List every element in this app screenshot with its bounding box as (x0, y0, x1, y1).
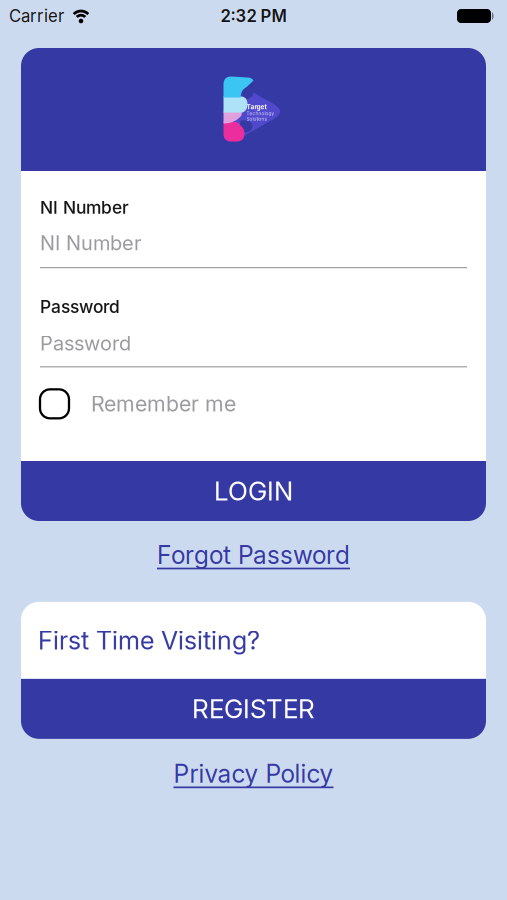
button[interactable]: REGISTER (21, 679, 486, 739)
staticText: Solutions (246, 116, 266, 122)
staticText: NI Number (40, 197, 129, 218)
staticText: Carrier (9, 6, 64, 26)
staticText: Password (40, 331, 131, 355)
staticText: LOGIN (214, 475, 293, 507)
staticText: Password (40, 296, 120, 317)
button[interactable]: Remember me (40, 389, 236, 418)
staticText: Privacy Policy (173, 759, 333, 789)
staticText: Remember me (91, 391, 236, 417)
staticText: Target (246, 103, 266, 111)
staticText: First Time Visiting? (38, 625, 260, 656)
staticText: Technology (246, 111, 274, 116)
button[interactable]: LOGIN (21, 461, 486, 521)
button[interactable]: Password secure text field (40, 331, 467, 367)
button[interactable]: Privacy Policy (173, 759, 333, 789)
button[interactable]: NI Number text field (40, 231, 467, 268)
staticText: Forgot Password (157, 540, 350, 570)
staticText: NI Number (40, 231, 141, 255)
button[interactable]: Forgot Password (157, 540, 350, 570)
staticText: REGISTER (192, 693, 315, 725)
staticText: 2:32 PM (220, 6, 286, 26)
